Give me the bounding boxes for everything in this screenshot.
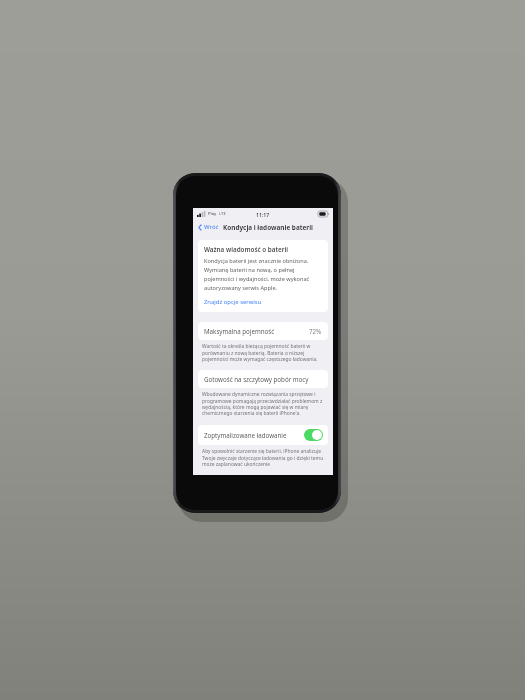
staticText: Zoptymalizowane ładowanie xyxy=(204,431,287,439)
staticText: Wróć xyxy=(204,223,219,231)
button[interactable]: Zoptymalizowane ładowanie toggle xyxy=(304,429,323,441)
staticText: pojemności i wydajności, może wykonać xyxy=(204,275,310,283)
button[interactable]: Maksymalna pojemność xyxy=(198,322,328,340)
staticText: Maksymalna pojemność xyxy=(204,327,275,335)
staticText: Wartość ta określa bieżącą pojemność bat… xyxy=(202,343,324,362)
staticText: LTE xyxy=(219,211,226,217)
staticText: 11:17 xyxy=(256,211,270,218)
button[interactable]: Gotowość na szczytowy pobór mocy xyxy=(198,370,328,388)
staticText: Wymianę baterii na nową, o pełnej xyxy=(204,266,295,274)
staticText: 72% xyxy=(309,327,322,335)
button[interactable]: Wróć xyxy=(197,221,220,233)
staticText: autoryzowany serwis Apple. xyxy=(204,284,278,292)
staticText: Ważna wiadomość o baterii xyxy=(204,245,288,254)
button[interactable]: Zoptymalizowane ładowanie xyxy=(198,425,328,445)
staticText: Kondycja i ładowanie baterii xyxy=(223,223,313,232)
staticText: Play xyxy=(208,211,217,217)
staticText: Kondycja baterii jest znacznie obniżona. xyxy=(204,257,309,265)
button[interactable]: Znajdź opcje serwisu xyxy=(204,297,322,307)
staticText: Znajdź opcje serwisu xyxy=(204,298,262,306)
staticText: Aby spowolnić starzenie się baterii, iPh… xyxy=(202,448,324,467)
staticText: Gotowość na szczytowy pobór mocy xyxy=(204,375,309,383)
staticText: Wbudowane dynamiczne rozwiązania sprzęto… xyxy=(202,391,324,416)
